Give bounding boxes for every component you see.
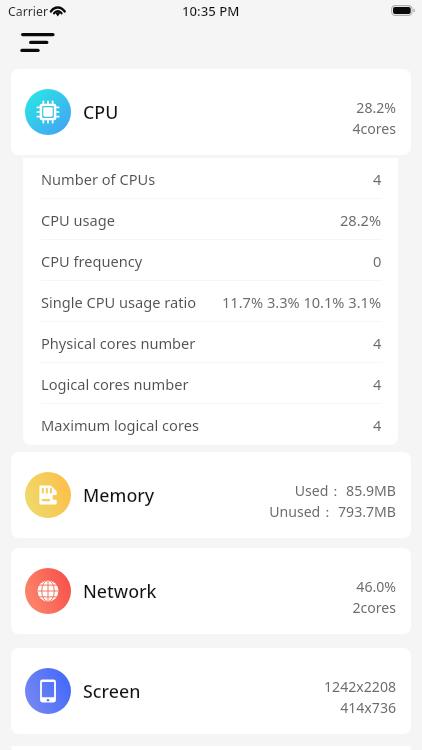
button[interactable]: Single CPU usage ratio	[23, 281, 398, 322]
staticText: Single CPU usage ratio	[41, 292, 197, 312]
button[interactable]: Maximum logical cores	[23, 404, 398, 445]
staticText: CPU usage	[41, 210, 115, 230]
button[interactable]: Number of CPUs	[23, 158, 398, 199]
staticText: Carrier	[8, 3, 49, 20]
staticText: CPU	[83, 100, 119, 124]
staticText: 1242x2208	[324, 677, 396, 696]
staticText: 4	[373, 169, 382, 189]
staticText: 0	[373, 251, 382, 271]
staticText: Physical cores number	[41, 333, 196, 353]
staticText: Number of CPUs	[41, 169, 156, 189]
button[interactable]: Memory	[11, 452, 411, 538]
button[interactable]: CPU	[11, 69, 411, 155]
button[interactable]: Screen	[11, 648, 411, 734]
button[interactable]: CPU usage	[23, 199, 398, 240]
staticText: Used： 85.9MB	[294, 481, 396, 500]
staticText: Memory	[83, 483, 155, 507]
staticText: 4	[373, 415, 382, 435]
staticText: Logical cores number	[41, 374, 189, 394]
staticText: 4cores	[352, 119, 396, 138]
staticText: Unused： 793.7MB	[269, 502, 396, 521]
staticText: 10:35 PM	[182, 2, 240, 20]
button[interactable]: Menu	[6, 25, 58, 65]
staticText: 4	[373, 374, 382, 394]
button[interactable]: Logical cores number	[23, 363, 398, 404]
staticText: 11.7% 3.3% 10.1% 3.1%	[222, 292, 382, 312]
staticText: 28.2%	[340, 210, 382, 230]
staticText: 28.2%	[356, 98, 396, 117]
button[interactable]: Physical cores number	[23, 322, 398, 363]
staticText: Screen	[83, 679, 141, 703]
staticText: Maximum logical cores	[41, 415, 199, 435]
staticText: CPU frequency	[41, 251, 143, 271]
button[interactable]: CPU frequency	[23, 240, 398, 281]
staticText: 4	[373, 333, 382, 353]
staticText: 2cores	[352, 598, 396, 617]
button[interactable]: Network	[11, 548, 411, 634]
staticText: 414x736	[340, 698, 396, 717]
staticText: Network	[83, 579, 157, 603]
staticText: 46.0%	[356, 577, 396, 596]
